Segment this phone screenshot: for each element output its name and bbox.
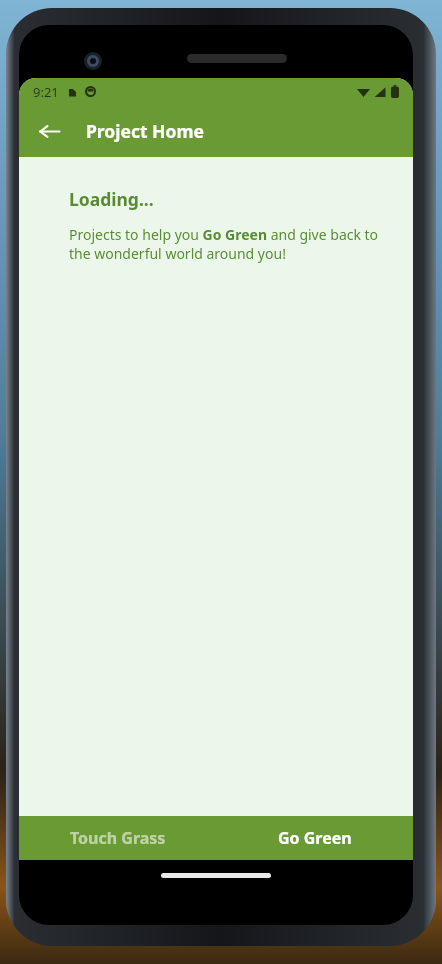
staticText: Go Green <box>278 827 352 849</box>
button[interactable]: Back <box>31 113 67 149</box>
staticText: Loading... <box>69 187 154 211</box>
staticText: Project Home <box>86 119 204 143</box>
button[interactable]: Go Green <box>216 816 413 860</box>
button[interactable]: Touch Grass <box>19 816 216 860</box>
staticText: Touch Grass <box>70 827 166 849</box>
staticText: 9:21 <box>33 83 59 101</box>
staticText: Projects to help you Go Green and give b… <box>69 225 393 263</box>
